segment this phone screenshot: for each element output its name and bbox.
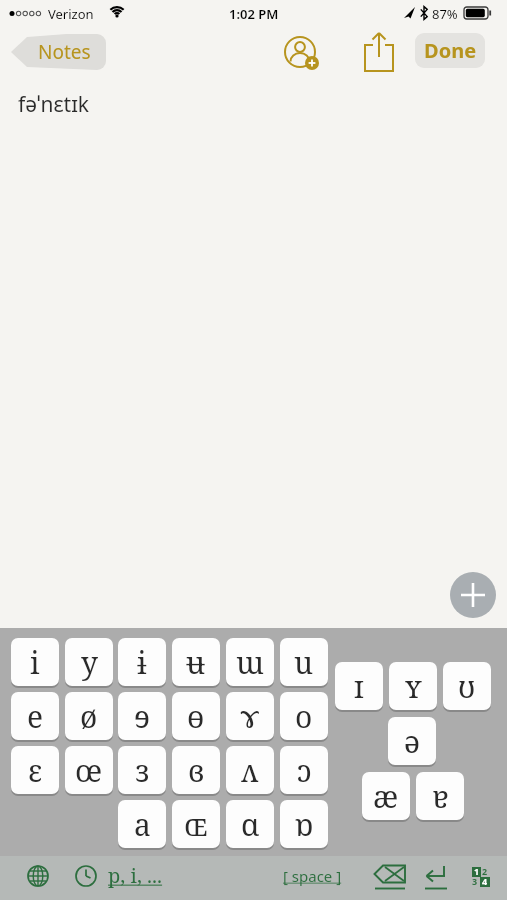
staticText: 1 [474,865,480,877]
staticText: e [27,696,44,737]
staticText: ɔ [297,750,312,791]
button[interactable]: u [280,638,328,686]
staticText: ʊ [458,666,476,707]
staticText: i [30,642,40,683]
staticText: 3 [472,875,478,887]
staticText: ɤ [241,696,259,737]
button[interactable] [27,865,49,887]
button[interactable]: ɶ [172,800,220,848]
button[interactable] [75,865,97,887]
button[interactable]: ɪ [335,662,383,710]
staticText: 4 [482,875,488,887]
button[interactable]: ø [65,692,113,740]
staticText: Notes [38,39,91,65]
staticText: y [81,642,98,683]
staticText: ɶ [184,804,208,845]
button[interactable]: Notes [10,34,106,70]
staticText: ø [80,696,98,737]
button[interactable]: ʏ [389,662,437,710]
staticText: ɜ [135,750,150,791]
staticText: ɒ [295,804,314,845]
staticText: ɨ [137,642,147,683]
staticText: ɐ [432,776,449,817]
button[interactable]: ɵ [172,692,220,740]
staticText: o [295,696,313,737]
button[interactable]: æ [362,772,410,820]
button[interactable]: ɛ [11,746,59,794]
button[interactable]: ɘ [118,692,166,740]
staticText: œ [75,750,103,791]
staticText: 1:02 PM [229,5,279,23]
staticText: a [134,804,151,845]
button[interactable]: ɞ [172,746,220,794]
button[interactable]: e [11,692,59,740]
button[interactable]: ɨ [118,638,166,686]
staticText: u [294,642,314,683]
staticText: ɛ [28,750,43,791]
staticText: ʏ [405,666,422,707]
staticText: ɘ [134,696,151,737]
button[interactable] [450,572,496,618]
staticText: ʉ [186,642,206,683]
button[interactable]: o [280,692,328,740]
staticText: 87% [432,5,458,23]
button[interactable]: ʌ [226,746,274,794]
button[interactable]: ʉ [172,638,220,686]
button[interactable]: œ [65,746,113,794]
button[interactable]: y [65,638,113,686]
button[interactable]: ɔ [280,746,328,794]
button[interactable]: ɑ [226,800,274,848]
button[interactable]: ɯ [226,638,274,686]
staticText: ʌ [241,750,259,791]
button[interactable]: i [11,638,59,686]
button[interactable]: 1 [469,866,493,890]
button[interactable]: p, i, ... [108,862,163,889]
staticText: ə [404,721,421,762]
button[interactable] [423,862,449,892]
button[interactable]: ɒ [280,800,328,848]
button[interactable] [363,31,395,73]
button[interactable]: a [118,800,166,848]
staticText: ɑ [241,804,260,845]
staticText: Verizon [48,5,94,23]
button[interactable]: ɤ [226,692,274,740]
button[interactable]: Done [415,33,485,68]
button[interactable]: [ space ] [283,866,342,886]
staticText: ɯ [236,642,265,683]
staticText: ɵ [187,696,205,737]
staticText: æ [373,776,399,817]
button[interactable]: ʊ [443,662,491,710]
staticText: fəˈnɛtɪk [18,90,90,119]
staticText: ɪ [354,666,364,707]
button[interactable]: ɜ [118,746,166,794]
button[interactable]: ə [388,717,436,765]
button[interactable]: ɐ [416,772,464,820]
button[interactable] [283,35,321,73]
staticText: ɞ [188,750,205,791]
button[interactable] [373,862,407,892]
staticText: 2 [482,865,488,877]
staticText: Done [424,37,477,64]
